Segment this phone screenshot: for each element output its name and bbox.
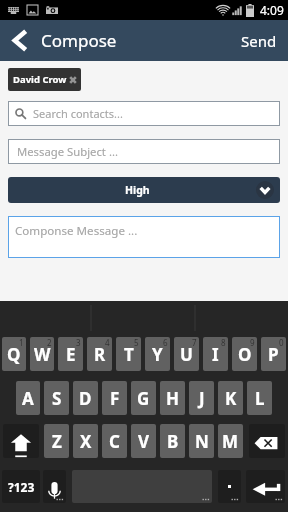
staticText: 0 [279, 337, 284, 348]
staticText: C [109, 430, 120, 453]
button[interactable]: X [73, 424, 98, 458]
button[interactable]: Send [230, 20, 288, 61]
staticText: O [238, 343, 252, 366]
button[interactable]: Componse Message ... [8, 216, 280, 258]
staticText: X [80, 430, 92, 453]
staticText: 7 [192, 337, 197, 348]
button[interactable]: High [8, 177, 280, 203]
staticText: L [255, 387, 265, 410]
staticText: E [66, 343, 76, 366]
staticText: 9 [250, 337, 255, 348]
staticText: 5 [134, 337, 139, 348]
button[interactable]: Message Subject ... [8, 139, 280, 164]
button[interactable]: Backspace [249, 424, 285, 458]
button[interactable]: W [30, 337, 54, 371]
button[interactable]: L [247, 381, 272, 415]
staticText: 6 [163, 337, 168, 348]
button[interactable]: F [102, 381, 127, 415]
staticText: Search contacts... [33, 106, 123, 121]
staticText: Y [152, 343, 163, 366]
staticText: A [22, 387, 34, 410]
staticText: K [225, 387, 237, 410]
staticText: M [222, 430, 239, 453]
button[interactable]: D [73, 381, 98, 415]
button[interactable]: H [160, 381, 185, 415]
staticText: Z [52, 430, 62, 453]
button[interactable]: Z [44, 424, 69, 458]
staticText: 4:09 [260, 2, 284, 18]
staticText: Message Subject ... [17, 144, 118, 159]
button[interactable]: Space [72, 470, 212, 503]
button[interactable]: N [189, 424, 214, 458]
staticText: N [195, 430, 209, 453]
button[interactable]: Search contacts... [8, 101, 280, 126]
staticText: Componse Message ... [15, 223, 138, 239]
staticText: Q [7, 343, 21, 366]
button[interactable]: ?123 [2, 470, 40, 503]
staticText: I [212, 343, 219, 366]
staticText: V [138, 430, 150, 453]
button[interactable]: Shift [3, 424, 39, 458]
staticText: P [268, 343, 279, 366]
button[interactable]: O [232, 337, 257, 371]
staticText: F [110, 387, 120, 410]
button[interactable]: T [116, 337, 141, 371]
staticText: High [125, 183, 150, 197]
button[interactable]: P [261, 337, 286, 371]
button[interactable]: Back [4, 20, 36, 61]
button[interactable]: Q [2, 337, 26, 371]
staticText: 3 [76, 337, 81, 348]
staticText: U [180, 343, 193, 366]
button[interactable]: Enter [246, 470, 285, 503]
button[interactable]: M [218, 424, 243, 458]
staticText: J [199, 387, 205, 410]
button[interactable]: G [131, 381, 156, 415]
button[interactable]: E [58, 337, 83, 371]
staticText: H [166, 387, 180, 410]
staticText: G [137, 387, 150, 410]
staticText: R [94, 343, 106, 366]
staticText: W [34, 343, 51, 366]
staticText: 2 [47, 337, 52, 348]
staticText: Send [241, 31, 277, 51]
staticText: David Crow [13, 73, 67, 86]
button[interactable]: Y [145, 337, 170, 371]
button[interactable]: S [44, 381, 69, 415]
staticText: 8 [221, 337, 226, 348]
button[interactable]: B [160, 424, 185, 458]
button[interactable]: Voice input [43, 470, 66, 503]
button[interactable]: C [102, 424, 127, 458]
button[interactable]: A [16, 381, 40, 415]
button[interactable]: U [174, 337, 199, 371]
button[interactable]: David Crow [8, 68, 81, 91]
staticText: B [167, 430, 179, 453]
button[interactable]: V [131, 424, 156, 458]
button[interactable]: K [218, 381, 243, 415]
staticText: T [124, 343, 134, 366]
staticText: Compose [41, 29, 117, 52]
button[interactable]: J [189, 381, 214, 415]
staticText: S [52, 387, 62, 410]
staticText: D [79, 387, 92, 410]
button[interactable]: R [87, 337, 112, 371]
staticText: 4 [105, 337, 110, 348]
staticText: 1 [19, 337, 24, 348]
staticText: ?123 [8, 479, 35, 495]
button[interactable]: Period [218, 470, 241, 503]
button[interactable]: I [203, 337, 228, 371]
